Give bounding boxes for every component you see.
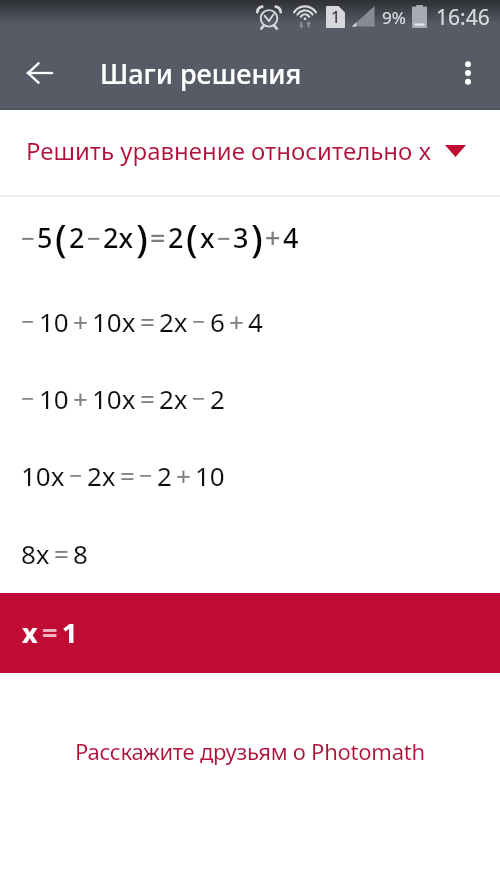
staticText: 2x (103, 219, 134, 256)
staticText: Расскажите друзьям о Photomath (75, 736, 425, 766)
staticText: Решить уравнение относительно x (26, 134, 432, 167)
staticText: = (150, 219, 166, 256)
button[interactable]: − (0, 197, 500, 283)
button[interactable]: x (0, 593, 500, 673)
staticText: 1 (331, 6, 341, 28)
button[interactable]: More options (444, 49, 492, 97)
staticText: 2 (168, 219, 184, 256)
staticText: 4 (283, 219, 299, 256)
staticText: 2x (159, 381, 188, 416)
staticText: − (21, 306, 35, 337)
staticText: 3 (233, 219, 249, 256)
staticText: 8 (73, 536, 88, 571)
button[interactable]: − (0, 360, 500, 437)
staticText: 1 (62, 614, 78, 651)
staticText: 2 (210, 381, 225, 416)
staticText: 10x (92, 304, 136, 339)
staticText: 16:46 (436, 3, 490, 32)
button[interactable]: 10x (0, 437, 500, 514)
button[interactable]: Back (16, 49, 64, 97)
staticText: + (176, 458, 191, 493)
staticText: ( (186, 212, 198, 263)
staticText: 4 (248, 304, 263, 339)
staticText: 2 (157, 458, 172, 493)
staticText: = (120, 458, 135, 493)
staticText: − (192, 306, 206, 337)
staticText: 8x (21, 536, 50, 571)
button[interactable]: − (0, 283, 500, 360)
staticText: x (200, 219, 215, 256)
staticText: ) (251, 212, 263, 263)
staticText: ) (136, 212, 148, 263)
staticText: − (192, 383, 206, 414)
staticText: = (54, 536, 69, 571)
staticText: 10x (92, 381, 136, 416)
staticText: + (73, 304, 88, 339)
staticText: 10 (195, 458, 225, 493)
staticText: 10 (39, 381, 69, 416)
staticText: − (139, 460, 153, 491)
staticText: 2x (87, 458, 116, 493)
staticText: 2x (159, 304, 188, 339)
staticText: 5 (37, 219, 53, 256)
staticText: 10x (21, 458, 65, 493)
staticText: 2 (69, 219, 85, 256)
staticText: 9% (382, 6, 406, 29)
staticText: − (217, 222, 231, 254)
staticText: + (265, 219, 281, 256)
staticText: = (140, 304, 155, 339)
staticText: x (22, 614, 38, 651)
staticText: ( (55, 212, 67, 263)
button[interactable]: Расскажите друзьям о Photomath (0, 731, 500, 771)
staticText: = (42, 614, 58, 651)
staticText: = (140, 381, 155, 416)
staticText: − (21, 222, 35, 254)
staticText: − (21, 383, 35, 414)
button[interactable]: 8x (0, 514, 500, 593)
button[interactable]: Решить уравнение относительно x (0, 110, 500, 195)
staticText: − (87, 222, 101, 254)
staticText: − (69, 460, 83, 491)
staticText: + (229, 304, 244, 339)
staticText: Шаги решения (100, 55, 302, 92)
staticText: 6 (210, 304, 225, 339)
staticText: 10 (39, 304, 69, 339)
staticText: + (73, 381, 88, 416)
